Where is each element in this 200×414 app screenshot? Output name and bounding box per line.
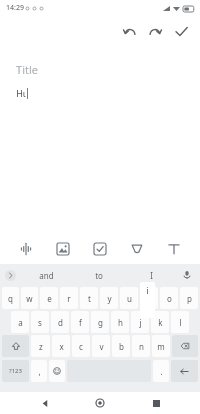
button[interactable]: ?123: [2, 360, 29, 382]
button[interactable]: .: [153, 360, 169, 382]
staticText: t: [88, 293, 91, 304]
button[interactable]: w: [21, 287, 38, 309]
button[interactable]: Enter: [171, 360, 198, 382]
staticText: Title: [16, 62, 38, 77]
staticText: j: [139, 317, 142, 328]
button[interactable]: d: [51, 311, 69, 333]
staticText: o: [167, 293, 172, 304]
staticText: v: [99, 341, 104, 352]
button[interactable]: l: [171, 311, 189, 333]
button[interactable]: i: [140, 287, 158, 309]
button[interactable]: Draw: [118, 235, 155, 263]
button[interactable]: f: [71, 311, 89, 333]
staticText: Hι: [16, 87, 26, 99]
button[interactable]: Expand toolbar: [5, 270, 16, 281]
staticText: h: [118, 317, 123, 328]
button[interactable]: c: [72, 335, 90, 357]
button[interactable]: Backspace: [172, 335, 198, 357]
staticText: l: [179, 317, 182, 328]
staticText: .: [160, 366, 163, 377]
button[interactable]: j: [131, 311, 149, 333]
staticText: n: [139, 341, 144, 352]
button[interactable]: Image: [44, 235, 81, 263]
staticText: e: [47, 293, 52, 304]
button[interactable]: Redo: [142, 18, 168, 44]
button[interactable]: Audio: [8, 235, 44, 263]
staticText: z: [39, 341, 43, 352]
staticText: d: [58, 317, 63, 328]
staticText: p: [187, 293, 192, 304]
staticText: m: [157, 341, 165, 352]
staticText: I: [150, 270, 153, 281]
button[interactable]: ,: [31, 360, 47, 382]
button[interactable]: b: [112, 335, 130, 357]
button[interactable]: y: [100, 287, 118, 309]
button[interactable]: q: [2, 287, 19, 309]
staticText: r: [67, 293, 71, 304]
staticText: 14:29: [6, 3, 24, 13]
staticText: q: [8, 293, 13, 304]
button[interactable]: e: [40, 287, 58, 309]
button[interactable]: h: [111, 311, 129, 333]
button[interactable]: t: [80, 287, 98, 309]
button[interactable]: Shift: [2, 335, 29, 357]
button[interactable]: n: [132, 335, 150, 357]
staticText: to: [95, 270, 103, 281]
button[interactable]: and: [20, 264, 72, 286]
staticText: u: [127, 293, 132, 304]
button[interactable]: Undo: [116, 18, 142, 44]
button[interactable]: r: [60, 287, 78, 309]
button[interactable]: x: [52, 335, 70, 357]
staticText: ,: [38, 366, 41, 377]
staticText: and: [39, 270, 54, 281]
staticText: x: [59, 341, 64, 352]
button[interactable]: Voice input: [180, 268, 194, 282]
button[interactable]: Done: [168, 18, 194, 44]
button[interactable]: g: [91, 311, 109, 333]
button[interactable]: Home: [89, 392, 111, 414]
staticText: a: [18, 317, 23, 328]
button[interactable]: m: [152, 335, 170, 357]
staticText: b: [119, 341, 124, 352]
staticText: w: [26, 293, 33, 304]
button[interactable]: Checkbox: [81, 235, 118, 263]
staticText: k: [158, 317, 163, 328]
staticText: s: [38, 317, 42, 328]
staticText: ?123: [9, 367, 22, 375]
button[interactable]: to: [72, 264, 125, 286]
button[interactable]: I: [125, 264, 178, 286]
button[interactable]: o: [160, 287, 178, 309]
button[interactable]: Recent apps: [145, 392, 167, 414]
button[interactable]: Text format: [155, 235, 192, 263]
button[interactable]: Emoji: [49, 360, 65, 382]
button[interactable]: u: [120, 287, 138, 309]
button[interactable]: z: [31, 335, 50, 357]
staticText: i: [146, 284, 149, 296]
button[interactable]: Back: [34, 392, 56, 414]
button[interactable]: s: [31, 311, 49, 333]
button[interactable]: a: [11, 311, 29, 333]
staticText: g: [98, 317, 103, 328]
staticText: c: [79, 341, 83, 352]
staticText: y: [107, 293, 112, 304]
staticText: f: [79, 317, 82, 328]
button[interactable]: p: [180, 287, 198, 309]
button[interactable]: v: [92, 335, 110, 357]
button[interactable]: k: [151, 311, 169, 333]
